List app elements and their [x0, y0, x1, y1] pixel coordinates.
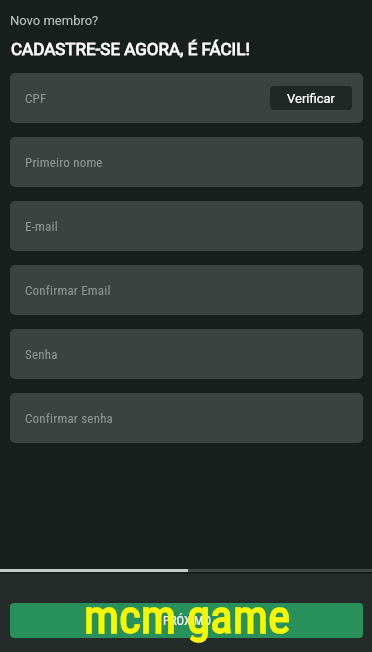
button[interactable]: CPF	[10, 73, 363, 123]
staticText: Primeiro nome	[25, 155, 103, 170]
button[interactable]: Primeiro nome	[10, 137, 363, 187]
staticText: CADASTRE-SE AGORA, É FÁCIL!	[11, 39, 250, 59]
other: Progresso do cadastro	[0, 569, 372, 572]
staticText: Verificar	[287, 91, 335, 106]
staticText: CPF	[25, 91, 47, 106]
button[interactable]: PRÓXIMO	[10, 603, 363, 638]
staticText: E-mail	[25, 219, 58, 234]
staticText: Confirmar Email	[25, 283, 111, 298]
button[interactable]: Senha	[10, 329, 363, 379]
button[interactable]: E-mail	[10, 201, 363, 251]
staticText: Confirmar senha	[25, 411, 114, 426]
button[interactable]: Confirmar senha	[10, 393, 363, 443]
staticText: Senha	[25, 347, 58, 362]
button[interactable]: Confirmar Email	[10, 265, 363, 315]
staticText: Novo membro?	[10, 13, 99, 28]
staticText: PRÓXIMO	[163, 613, 211, 628]
button[interactable]: Verificar	[270, 86, 352, 110]
staticText: mcm game	[84, 590, 291, 644]
